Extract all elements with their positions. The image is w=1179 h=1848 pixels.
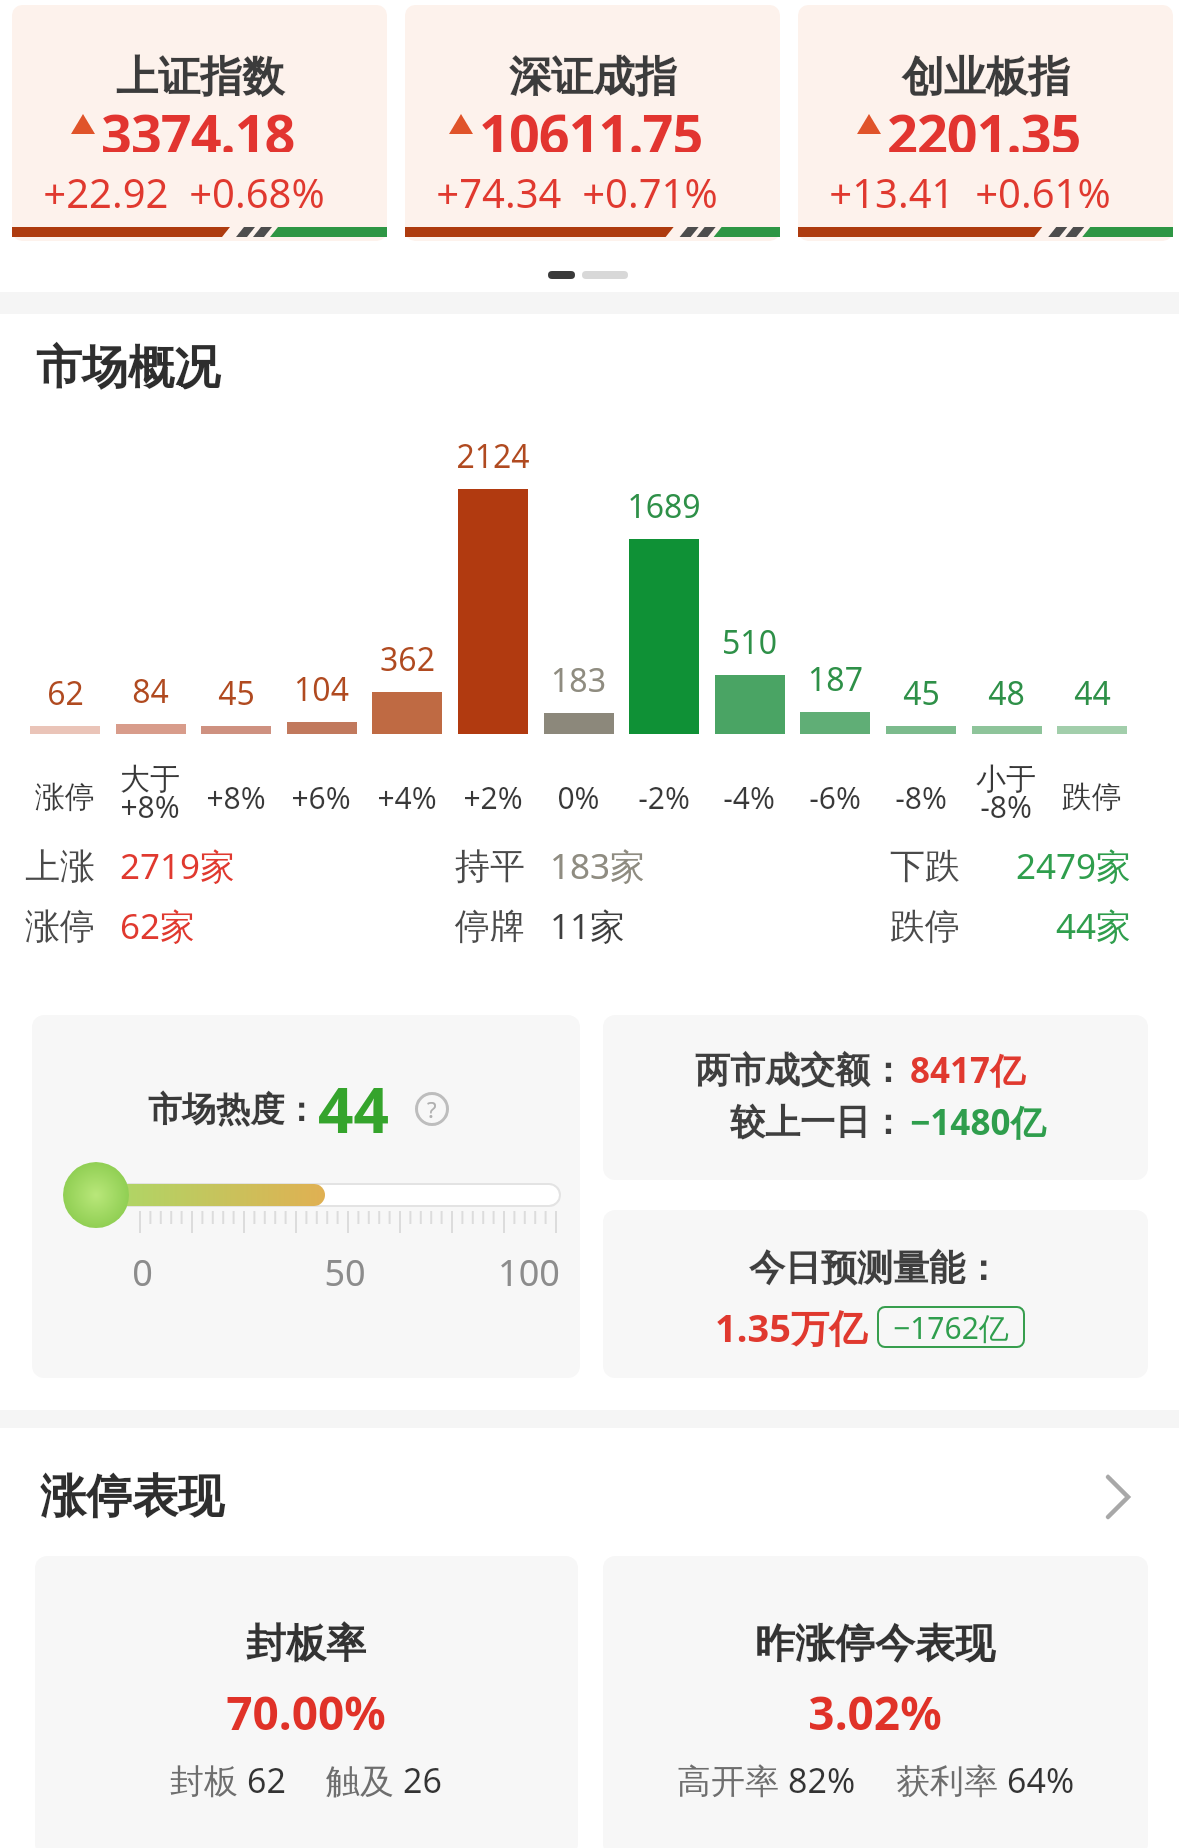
- staticText: 1.35万亿: [715, 1301, 867, 1353]
- staticText: -4%: [723, 777, 775, 818]
- staticText: 2201.35: [887, 96, 1081, 152]
- staticText: 涨停: [25, 904, 95, 948]
- staticText: 44: [1074, 671, 1111, 715]
- staticText: 11家: [550, 902, 626, 950]
- staticText: 62: [247, 1757, 286, 1803]
- staticText: -6%: [809, 777, 861, 818]
- staticText: 62: [47, 671, 84, 715]
- staticText: 0: [132, 1248, 153, 1297]
- staticText: 2479家: [1016, 842, 1132, 890]
- staticText: +74.34 +0.71%: [436, 165, 718, 219]
- staticText: 183: [551, 658, 606, 702]
- staticText: 2719家: [120, 842, 236, 890]
- staticText: 跌停: [890, 904, 960, 948]
- staticText: 64%: [1007, 1757, 1075, 1803]
- button[interactable]: [603, 1210, 1148, 1378]
- staticText: 昨涨停今表现: [755, 1618, 995, 1668]
- staticText: +22.92 +0.68%: [43, 165, 325, 219]
- staticText: 大于 +8%: [120, 760, 180, 827]
- staticText: 涨停表现: [40, 1468, 224, 1526]
- staticText: +13.41 +0.61%: [829, 165, 1111, 219]
- button[interactable]: [35, 1556, 578, 1848]
- button[interactable]: 创业板指: [798, 5, 1173, 241]
- staticText: 上证指数: [116, 51, 284, 104]
- staticText: 3374.18: [101, 96, 295, 152]
- staticText: -8%: [895, 777, 947, 818]
- staticText: +2%: [463, 777, 523, 818]
- staticText: 3.02%: [808, 1681, 942, 1744]
- button[interactable]: 深证成指: [405, 5, 780, 241]
- button[interactable]: [603, 1556, 1148, 1848]
- staticText: 183家: [550, 842, 646, 890]
- staticText: 510: [722, 620, 777, 664]
- staticText: 26: [403, 1757, 442, 1803]
- staticText: 2124: [456, 434, 530, 478]
- button[interactable]: 市场热度：: [32, 1015, 580, 1378]
- staticText: ?: [427, 1094, 437, 1124]
- staticText: 较上一日：: [730, 1100, 905, 1144]
- staticText: 封板率: [246, 1618, 366, 1668]
- staticText: +8%: [206, 777, 266, 818]
- staticText: 高开率: [677, 1757, 788, 1803]
- staticText: 1689: [627, 484, 701, 528]
- staticText: 市场概况: [36, 339, 220, 397]
- staticText: 104: [294, 667, 349, 711]
- staticText: 82%: [788, 1757, 856, 1803]
- staticText: 48: [988, 671, 1025, 715]
- staticText: 下跌: [890, 844, 960, 888]
- button[interactable]: [603, 1015, 1148, 1180]
- staticText: 持平: [455, 844, 525, 888]
- staticText: -2%: [638, 777, 690, 818]
- staticText: 100: [498, 1248, 560, 1297]
- staticText: 封板: [170, 1757, 247, 1803]
- staticText: 187: [808, 657, 863, 701]
- staticText: 涨停: [35, 778, 95, 816]
- staticText: 市场热度：: [148, 1088, 318, 1131]
- button[interactable]: 上证指数: [12, 5, 387, 241]
- staticText: 70.00%: [226, 1681, 386, 1744]
- staticText: 62家: [120, 902, 196, 950]
- staticText: 44: [318, 1067, 389, 1151]
- staticText: 45: [903, 671, 940, 715]
- staticText: 跌停: [1062, 778, 1122, 816]
- staticText: 0%: [557, 777, 600, 818]
- staticText: 停牌: [455, 904, 525, 948]
- staticText: 8417亿: [910, 1046, 1026, 1094]
- staticText: 今日预测量能：: [749, 1245, 1001, 1290]
- staticText: 84: [132, 669, 169, 713]
- staticText: −1480亿: [910, 1098, 1046, 1146]
- staticText: 45: [218, 671, 255, 715]
- staticText: 触及: [326, 1757, 403, 1803]
- staticText: 小于 -8%: [976, 760, 1036, 827]
- staticText: +4%: [377, 777, 437, 818]
- staticText: 获利率: [896, 1757, 1007, 1803]
- staticText: 深证成指: [509, 51, 677, 104]
- staticText: 44家: [1056, 902, 1132, 950]
- staticText: +6%: [291, 777, 351, 818]
- staticText: 创业板指: [902, 51, 1070, 104]
- staticText: −1762亿: [893, 1307, 1009, 1348]
- staticText: 10611.75: [479, 96, 703, 152]
- staticText: 上涨: [25, 844, 95, 888]
- staticText: 50: [324, 1248, 366, 1297]
- staticText: 362: [380, 637, 435, 681]
- staticText: 两市成交额：: [695, 1048, 905, 1092]
